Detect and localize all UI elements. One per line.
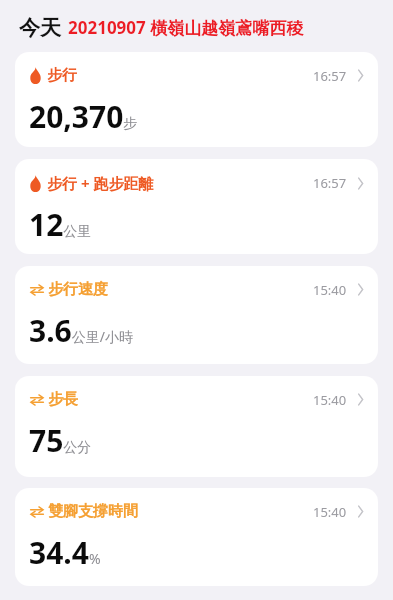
staticText: 15:40 xyxy=(313,391,347,409)
staticText: 15:40 xyxy=(313,281,347,299)
staticText: 20210907 橫嶺山越嶺鳶嘴西稜 xyxy=(68,16,304,39)
staticText: 雙腳支撐時間 xyxy=(48,502,138,521)
staticText: 12公里 xyxy=(29,204,92,245)
button[interactable]: 雙腳支撐時間 xyxy=(15,488,378,586)
staticText: 步行 + 跑步距離 xyxy=(47,173,154,193)
staticText: 34.4% xyxy=(29,532,101,573)
staticText: 3.6公里/小時 xyxy=(29,310,133,351)
staticText: 15:40 xyxy=(313,503,347,521)
staticText: 20,370步 xyxy=(29,96,138,137)
staticText: 步行 xyxy=(47,66,77,85)
button[interactable]: 步長 xyxy=(15,376,378,477)
button[interactable]: 步行 + 跑步距離 xyxy=(15,159,378,254)
button[interactable]: 步行速度 xyxy=(15,266,378,364)
button[interactable]: 步行 xyxy=(15,52,378,147)
staticText: 16:57 xyxy=(313,67,347,85)
staticText: 今天 xyxy=(19,15,61,41)
staticText: 步行速度 xyxy=(48,280,108,299)
staticText: 75公分 xyxy=(29,420,92,461)
staticText: 16:57 xyxy=(313,174,347,192)
staticText: 步長 xyxy=(48,390,78,409)
